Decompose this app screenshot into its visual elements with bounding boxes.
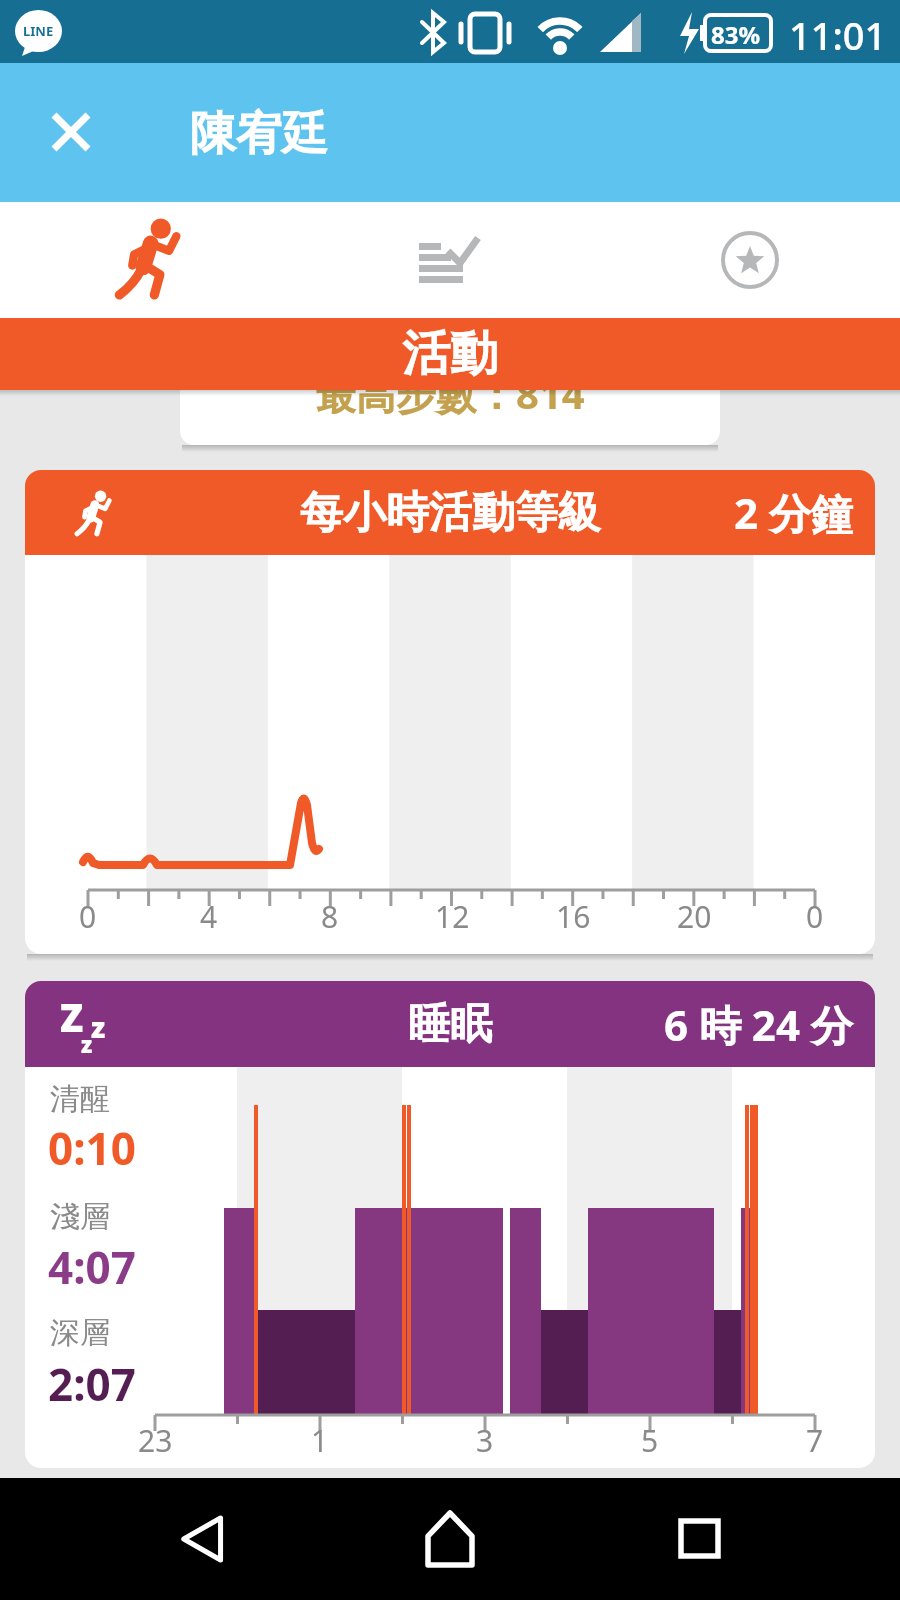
staticText: 0 — [79, 896, 97, 937]
staticText: 8 — [321, 896, 339, 937]
staticText: 7 — [806, 1420, 824, 1461]
staticText: 0 — [806, 896, 824, 937]
button[interactable]: 最高步數：814 — [180, 390, 720, 445]
staticText: z — [91, 1008, 106, 1046]
staticText: 23 — [138, 1420, 173, 1461]
button[interactable]: Z — [25, 981, 875, 1468]
staticText: 最高步數：814 — [316, 390, 585, 421]
staticText: 淺層 — [50, 1198, 110, 1236]
staticText: 3 — [476, 1420, 494, 1461]
staticText: LINE — [23, 22, 54, 40]
staticText: 陳宥廷 — [190, 105, 328, 163]
staticText: 6 時 24 分 — [664, 996, 853, 1053]
staticText: 16 — [556, 896, 591, 937]
staticText: 5 — [641, 1420, 659, 1461]
button[interactable] — [600, 202, 900, 318]
staticText: 睡眠 — [408, 998, 492, 1051]
staticText: 20 — [677, 896, 712, 937]
button[interactable]: 每小時活動等級 — [25, 470, 875, 954]
staticText: Z — [60, 991, 84, 1043]
staticText: 活動 — [402, 324, 498, 384]
staticText: 每小時活動等級 — [300, 486, 601, 540]
button[interactable] — [649, 1478, 749, 1600]
button[interactable] — [300, 202, 600, 318]
button[interactable] — [0, 202, 300, 318]
staticText: 4:07 — [48, 1237, 136, 1297]
button[interactable] — [154, 1478, 254, 1600]
staticText: 2 分鐘 — [734, 484, 853, 541]
staticText: 1 — [311, 1420, 329, 1461]
staticText: 4 — [200, 896, 218, 937]
staticText: 0:10 — [48, 1118, 136, 1178]
staticText: 12 — [435, 896, 470, 937]
staticText: 2:07 — [48, 1354, 136, 1414]
staticText: 清醒 — [50, 1080, 110, 1118]
staticText: z — [81, 1029, 93, 1059]
staticText: 深層 — [50, 1314, 110, 1352]
button[interactable] — [41, 102, 101, 162]
staticText: 83% — [711, 18, 761, 51]
staticText: 11:01 — [789, 9, 887, 61]
button[interactable] — [400, 1478, 500, 1600]
